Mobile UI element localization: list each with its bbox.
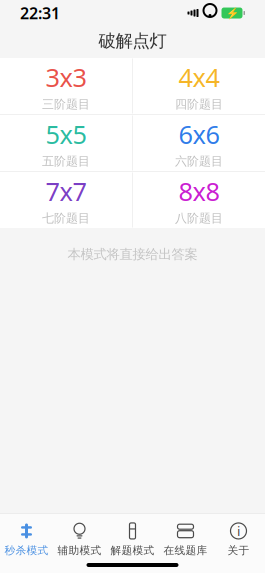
- staticText: 八阶题目: [175, 211, 223, 226]
- button[interactable]: i: [212, 517, 265, 561]
- staticText: 5x5: [45, 117, 86, 151]
- staticText: 六阶题目: [175, 154, 223, 169]
- staticText: 三阶题目: [42, 97, 90, 112]
- button[interactable]: 7x7: [0, 172, 132, 228]
- button[interactable]: 3x3: [0, 58, 132, 114]
- staticText: 四阶题目: [175, 97, 223, 112]
- staticText: 8x8: [178, 174, 219, 208]
- staticText: 7x7: [45, 174, 86, 208]
- staticText: 解题模式: [110, 544, 154, 557]
- button[interactable]: 在线题库: [159, 517, 212, 561]
- staticText: 辅助模式: [57, 544, 101, 557]
- staticText: 七阶题目: [42, 211, 90, 226]
- staticText: ⚡: [225, 7, 238, 19]
- button[interactable]: 4x4: [133, 58, 265, 114]
- staticText: 秒杀模式: [4, 544, 48, 557]
- button[interactable]: 秒杀模式: [0, 517, 53, 561]
- staticText: 在线题库: [163, 544, 207, 557]
- button[interactable]: 5x5: [0, 115, 132, 171]
- staticText: 破解点灯: [98, 30, 166, 52]
- staticText: 本模式将直接给出答案: [67, 246, 197, 262]
- staticText: 6x6: [178, 117, 219, 151]
- button[interactable]: 解题模式: [106, 517, 159, 561]
- staticText: 22:31: [20, 2, 60, 24]
- staticText: 3x3: [45, 60, 86, 94]
- button[interactable]: 6x6: [133, 115, 265, 171]
- staticText: 五阶题目: [42, 154, 90, 169]
- staticText: i: [237, 522, 240, 540]
- staticText: 关于: [227, 544, 249, 557]
- staticText: 4x4: [178, 60, 219, 94]
- button[interactable]: 辅助模式: [53, 517, 106, 561]
- button[interactable]: 8x8: [133, 172, 265, 228]
